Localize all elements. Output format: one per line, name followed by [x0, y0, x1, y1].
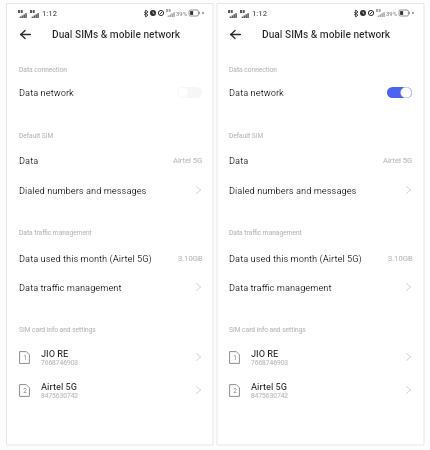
- staticText: SIM card info and settings: [229, 326, 306, 334]
- button[interactable]: 2: [217, 377, 424, 403]
- staticText: 3.10GB: [178, 254, 203, 263]
- staticText: Data network: [229, 87, 284, 98]
- staticText: 1:12: [252, 9, 267, 18]
- staticText: 2: [23, 387, 27, 395]
- button[interactable]: Data network: [7, 83, 214, 101]
- staticText: 1: [23, 354, 27, 362]
- staticText: 7668746903: [41, 359, 79, 367]
- button[interactable]: Dialed numbers and messages: [217, 181, 424, 199]
- staticText: Airtel 5G: [41, 381, 78, 392]
- staticText: Data: [229, 155, 249, 166]
- button[interactable]: Data traffic management: [7, 278, 214, 296]
- staticText: 1: [233, 354, 237, 362]
- staticText: Data network: [19, 87, 74, 98]
- staticText: Dialed numbers and messages: [229, 185, 357, 196]
- staticText: Airtel 5G: [173, 156, 203, 165]
- staticText: 8475630742: [251, 392, 289, 400]
- staticText: Airtel 5G: [383, 156, 413, 165]
- button[interactable]: 1: [7, 344, 214, 370]
- staticText: Data traffic management: [229, 229, 302, 237]
- button[interactable]: Back: [15, 24, 35, 44]
- button[interactable]: Back: [225, 24, 245, 44]
- staticText: Default SIM: [19, 132, 54, 140]
- button[interactable]: Data used this month (Airtel 5G): [217, 249, 424, 267]
- button[interactable]: Data: [7, 151, 214, 169]
- button[interactable]: Data: [217, 151, 424, 169]
- button[interactable]: Dialed numbers and messages: [7, 181, 214, 199]
- staticText: Data connection: [229, 66, 277, 74]
- staticText: Data connection: [19, 66, 67, 74]
- staticText: 7668746903: [251, 359, 289, 367]
- staticText: Data traffic management: [19, 282, 122, 293]
- button[interactable]: Data used this month (Airtel 5G): [7, 249, 214, 267]
- staticText: JIO RE: [41, 348, 69, 359]
- button[interactable]: Data network: [217, 83, 424, 101]
- staticText: Dual SIMs & mobile network: [262, 29, 391, 41]
- staticText: Data used this month (Airtel 5G): [19, 253, 152, 264]
- staticText: Dialed numbers and messages: [19, 185, 147, 196]
- staticText: Dual SIMs & mobile network: [52, 29, 181, 41]
- staticText: 39%: [176, 10, 188, 17]
- button[interactable]: Data traffic management: [217, 278, 424, 296]
- staticText: JIO RE: [251, 348, 279, 359]
- staticText: Data traffic management: [229, 282, 332, 293]
- button[interactable]: 2: [7, 377, 214, 403]
- staticText: Data: [19, 155, 39, 166]
- button[interactable]: 1: [217, 344, 424, 370]
- staticText: 39%: [386, 10, 398, 17]
- staticText: Default SIM: [229, 132, 264, 140]
- staticText: SIM card info and settings: [19, 326, 96, 334]
- staticText: Data traffic management: [19, 229, 92, 237]
- staticText: Airtel 5G: [251, 381, 288, 392]
- staticText: 1:12: [42, 9, 57, 18]
- staticText: 3.10GB: [388, 254, 413, 263]
- staticText: 8475630742: [41, 392, 79, 400]
- staticText: Data used this month (Airtel 5G): [229, 253, 362, 264]
- staticText: 2: [233, 387, 237, 395]
